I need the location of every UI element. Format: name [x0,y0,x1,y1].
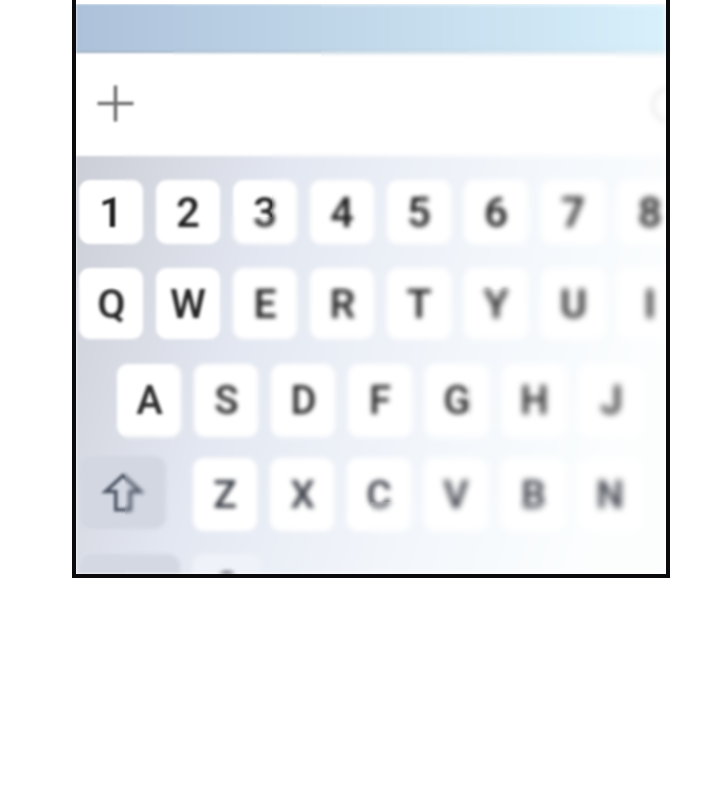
button[interactable]: X [321,502,334,531]
button[interactable]: T [387,289,420,339]
button[interactable]: V [424,458,469,502]
button[interactable]: Symbols [174,554,180,574]
button[interactable]: W [156,268,174,289]
button[interactable]: 7 [567,217,605,244]
button[interactable]: 6 [469,217,518,244]
button[interactable]: N [616,502,642,531]
button[interactable]: 7 [567,180,605,217]
button[interactable]: Account [652,87,666,123]
button[interactable]: Q [125,268,143,289]
button[interactable]: N [578,458,616,502]
button[interactable]: Shift [80,456,125,502]
button[interactable]: Z [193,502,223,531]
button[interactable]: Q [79,289,125,339]
button[interactable]: 7 [541,217,567,244]
button[interactable]: S [194,431,223,437]
button[interactable]: U [567,289,605,339]
button[interactable]: 8 [618,217,666,244]
button[interactable]: R [371,289,374,339]
button[interactable]: Q [125,289,143,339]
button[interactable]: A [117,431,125,437]
button[interactable]: Y [469,289,518,339]
button[interactable]: D [321,431,335,437]
button[interactable]: Add [125,80,139,127]
button[interactable]: E [272,289,297,339]
button[interactable]: C [347,502,371,531]
button[interactable]: Z [223,502,257,531]
button[interactable]: F [371,431,412,437]
button[interactable]: D [272,431,321,437]
button[interactable]: 1 [79,217,125,244]
button[interactable]: G [469,364,489,431]
button[interactable]: 2 [174,180,220,217]
button[interactable]: T [420,268,451,289]
button[interactable]: T [387,268,420,289]
button[interactable]: 6 [469,180,518,217]
button[interactable]: E [272,268,297,289]
button[interactable]: Shift [80,502,125,529]
button[interactable]: W [174,268,220,289]
button[interactable]: T [420,289,451,339]
button[interactable]: X [270,502,272,531]
button[interactable]: R [371,268,374,289]
button[interactable]: S [223,364,258,431]
button[interactable]: Symbols [125,554,174,574]
button[interactable]: V [424,502,469,531]
button[interactable]: R [321,268,371,289]
button[interactable]: J [579,364,616,431]
button[interactable]: J [616,364,643,431]
button[interactable]: 7 [541,180,567,217]
button[interactable]: 6 [464,217,469,244]
button[interactable]: X [272,458,321,502]
button[interactable]: 2 [156,217,174,244]
button[interactable]: Emoji [223,554,262,574]
button[interactable]: G [425,364,469,431]
button[interactable]: C [347,458,371,502]
button[interactable]: A [125,364,174,431]
button[interactable]: A [117,364,125,431]
button[interactable]: 3 [272,180,297,217]
button[interactable]: U [541,268,567,289]
button[interactable]: 5 [387,217,420,244]
button[interactable]: 4 [321,217,371,244]
button[interactable]: Shift [125,502,166,529]
button[interactable]: X [272,502,321,531]
button[interactable]: F [348,364,371,431]
button[interactable]: 1 [79,180,125,217]
button[interactable]: 8 [618,180,666,217]
button[interactable]: D [271,364,272,431]
button[interactable]: 4 [310,217,321,244]
button[interactable]: Symbols [80,554,125,574]
button[interactable]: B [518,458,565,502]
button[interactable]: 5 [387,180,420,217]
button[interactable]: 6 [464,180,469,217]
button[interactable]: U [567,268,605,289]
button[interactable]: E [233,268,272,289]
button[interactable]: D [272,364,321,431]
button[interactable]: N [616,458,642,502]
button[interactable]: I [618,289,666,339]
button[interactable]: 2 [156,180,174,217]
button[interactable]: F [348,431,371,437]
button[interactable]: 3 [272,217,297,244]
button[interactable]: S [194,364,223,431]
button[interactable]: S [223,431,258,437]
button[interactable]: X [270,458,272,502]
button[interactable]: C [371,502,411,531]
button[interactable]: Shift [125,456,166,502]
button[interactable]: A [174,364,181,431]
button[interactable]: A [174,431,181,437]
